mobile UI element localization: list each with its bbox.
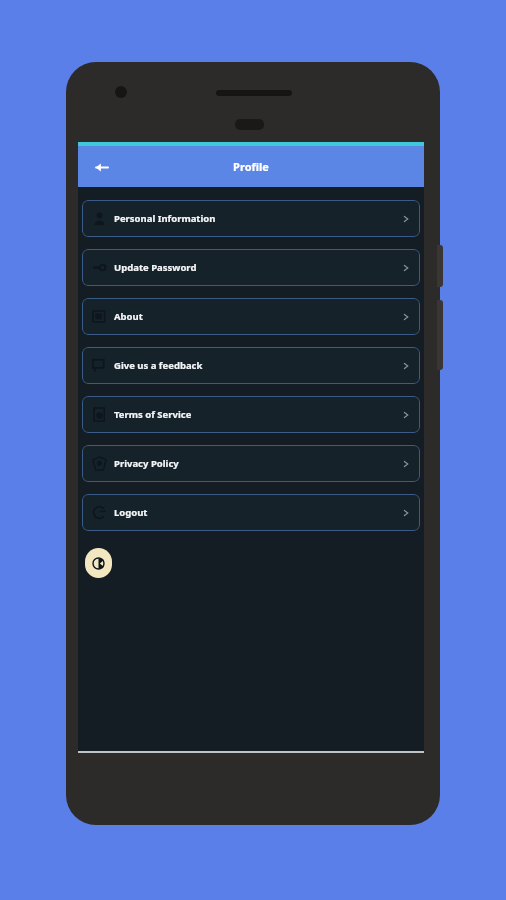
button[interactable]: Theme toggle: [85, 548, 112, 578]
button[interactable]: Back: [88, 154, 114, 180]
button[interactable]: Terms of Service: [82, 396, 420, 433]
staticText: Terms of Service: [114, 408, 192, 421]
staticText: Personal Information: [114, 212, 216, 225]
button[interactable]: About: [82, 298, 420, 335]
button[interactable]: Privacy Policy: [82, 445, 420, 482]
staticText: Update Password: [114, 261, 197, 274]
button[interactable]: Give us a feedback: [82, 347, 420, 384]
staticText: Privacy Policy: [114, 457, 179, 470]
staticText: About: [114, 310, 143, 323]
button[interactable]: Personal Information: [82, 200, 420, 237]
button[interactable]: Update Password: [82, 249, 420, 286]
staticText: Profile: [233, 159, 269, 174]
staticText: Give us a feedback: [114, 359, 203, 372]
staticText: Logout: [114, 506, 148, 519]
button[interactable]: Logout: [82, 494, 420, 531]
